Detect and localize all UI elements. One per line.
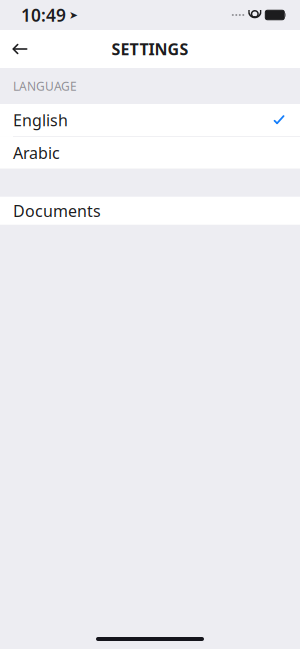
- staticText: Arabic: [13, 142, 60, 163]
- button[interactable]: Documents: [0, 197, 300, 225]
- button[interactable]: English: [0, 104, 300, 136]
- staticText: ➤: [69, 9, 78, 21]
- staticText: 10:49: [21, 3, 66, 26]
- button[interactable]: Back: [0, 30, 40, 68]
- button[interactable]: Arabic: [0, 137, 300, 169]
- staticText: LANGUAGE: [13, 78, 77, 94]
- staticText: Documents: [13, 200, 101, 221]
- staticText: English: [13, 109, 68, 131]
- staticText: SETTINGS: [111, 38, 188, 60]
